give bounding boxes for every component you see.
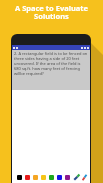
button[interactable] [25,175,30,180]
button[interactable] [33,175,38,180]
button[interactable]: Pen [73,174,80,181]
button[interactable]: Eraser [82,174,87,181]
button[interactable] [65,175,70,180]
staticText: A Space to Evaluate Solutions [0,3,103,21]
button[interactable] [49,175,54,180]
button[interactable] [17,175,22,180]
staticText: 2. A rectangular field is to be fenced o… [14,51,88,76]
button[interactable] [41,175,46,180]
button[interactable] [57,175,62,180]
